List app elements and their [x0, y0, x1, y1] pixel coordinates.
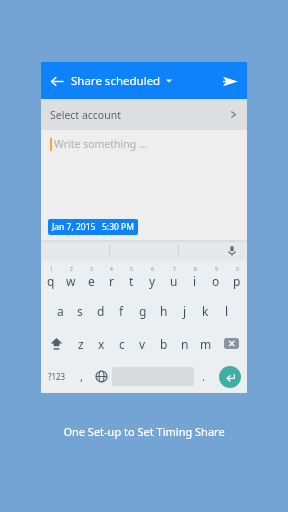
- staticText: n: [181, 336, 189, 352]
- button[interactable]: Jan 7, 2015: [48, 219, 138, 235]
- button[interactable]: a: [50, 294, 70, 327]
- staticText: Write something ...: [54, 137, 148, 151]
- staticText: k: [202, 303, 209, 319]
- staticText: ,: [80, 369, 83, 384]
- button[interactable]: b: [153, 327, 174, 360]
- button[interactable]: Enter: [219, 366, 241, 388]
- button[interactable]: Send: [213, 64, 247, 98]
- button[interactable]: l: [216, 294, 237, 327]
- staticText: c: [119, 336, 125, 352]
- staticText: x: [98, 336, 105, 352]
- staticText: q: [47, 273, 55, 289]
- button[interactable]: 1: [41, 261, 61, 294]
- button[interactable]: ,: [72, 360, 90, 393]
- button[interactable]: k: [195, 294, 216, 327]
- button[interactable]: .: [194, 360, 212, 393]
- staticText: 2: [70, 266, 73, 273]
- staticText: m: [200, 336, 212, 352]
- button[interactable]: Change language: [90, 360, 112, 393]
- staticText: a: [57, 303, 64, 319]
- button[interactable]: Shift: [41, 327, 71, 360]
- button[interactable]: 0: [226, 261, 247, 294]
- staticText: 1: [50, 266, 53, 273]
- button[interactable]: h: [153, 294, 174, 327]
- button[interactable]: 4: [101, 261, 121, 294]
- staticText: g: [139, 303, 147, 319]
- staticText: 0: [236, 266, 239, 273]
- staticText: j: [183, 303, 187, 319]
- button[interactable]: 5: [121, 261, 142, 294]
- staticText: u: [170, 273, 178, 289]
- staticText: o: [212, 273, 220, 289]
- button[interactable]: g: [132, 294, 153, 327]
- staticText: d: [97, 303, 105, 319]
- button[interactable]: Write something ...: [41, 130, 247, 241]
- button[interactable]: 9: [205, 261, 226, 294]
- staticText: 7: [173, 266, 176, 273]
- staticText: .: [202, 369, 205, 384]
- staticText: Select account: [50, 108, 121, 122]
- button[interactable]: 7: [163, 261, 184, 294]
- staticText: w: [66, 273, 76, 289]
- staticText: 6: [151, 266, 154, 273]
- button[interactable]: z: [71, 327, 91, 360]
- staticText: i: [193, 273, 197, 289]
- button[interactable]: Backspace: [216, 327, 247, 360]
- staticText: Jan 7, 2015: [52, 221, 96, 233]
- button[interactable]: 8: [184, 261, 205, 294]
- staticText: v: [139, 336, 146, 352]
- staticText: e: [88, 273, 95, 289]
- staticText: 5: [130, 266, 133, 273]
- button[interactable]: d: [90, 294, 111, 327]
- staticText: y: [149, 273, 156, 289]
- button[interactable]: f: [111, 294, 132, 327]
- button[interactable]: c: [111, 327, 132, 360]
- button[interactable]: m: [195, 327, 216, 360]
- button[interactable]: n: [174, 327, 195, 360]
- staticText: p: [233, 273, 241, 289]
- staticText: b: [160, 336, 168, 352]
- button[interactable]: Voice input: [224, 243, 240, 259]
- staticText: 8: [194, 266, 197, 273]
- staticText: ?123: [48, 371, 66, 382]
- staticText: Share scheduled: [71, 73, 161, 89]
- staticText: 5:30 PM: [102, 221, 134, 233]
- button[interactable]: x: [91, 327, 111, 360]
- button[interactable]: 6: [142, 261, 163, 294]
- staticText: r: [109, 273, 114, 289]
- staticText: l: [225, 303, 229, 319]
- staticText: h: [160, 303, 168, 319]
- button[interactable]: 3: [81, 261, 101, 294]
- button[interactable]: Select account: [41, 99, 247, 130]
- staticText: 3: [90, 266, 93, 273]
- staticText: 9: [215, 266, 218, 273]
- button[interactable]: 2: [61, 261, 81, 294]
- staticText: f: [119, 303, 124, 319]
- button[interactable]: Share scheduled: [71, 62, 213, 99]
- staticText: z: [78, 336, 84, 352]
- staticText: s: [77, 303, 83, 319]
- staticText: 4: [110, 266, 113, 273]
- button[interactable]: s: [70, 294, 90, 327]
- button[interactable]: ?123: [41, 360, 72, 393]
- staticText: One Set-up to Set Timing Share: [63, 424, 225, 439]
- staticText: t: [129, 273, 134, 289]
- button[interactable]: Back: [41, 66, 71, 96]
- button[interactable]: v: [132, 327, 153, 360]
- button[interactable]: j: [174, 294, 195, 327]
